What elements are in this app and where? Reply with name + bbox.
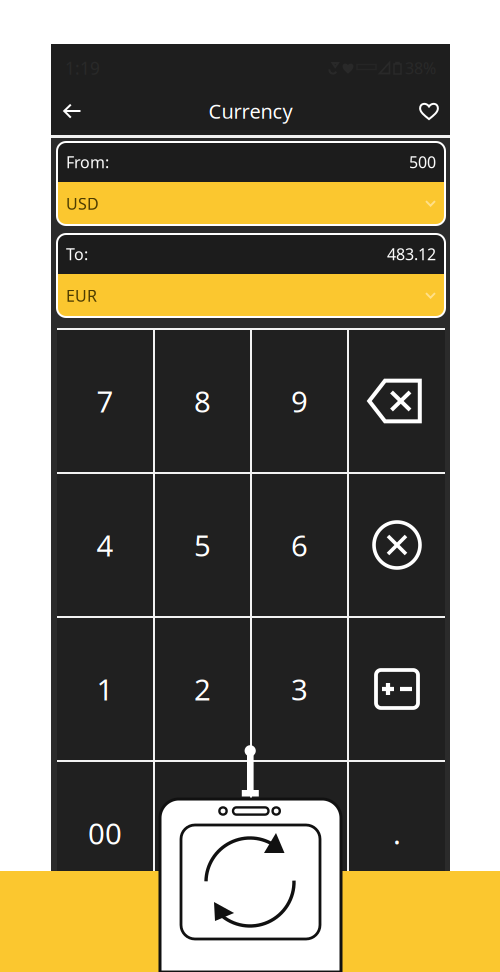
- staticText: 3: [291, 669, 308, 708]
- button[interactable]: Decimal point: [349, 762, 445, 904]
- button[interactable]: 3: [252, 618, 347, 760]
- button[interactable]: 4: [57, 474, 153, 616]
- button[interactable]: ,: [252, 762, 347, 904]
- button[interactable]: EUR: [57, 274, 445, 317]
- button[interactable]: Toggle sign: [349, 618, 445, 760]
- button[interactable]: 0: [155, 762, 250, 904]
- staticText: 4: [96, 525, 113, 564]
- button[interactable]: 8: [155, 330, 250, 472]
- staticText: 00: [88, 813, 122, 852]
- staticText: 483.12: [387, 243, 436, 265]
- staticText: 1: [96, 669, 113, 708]
- staticText: 8: [194, 381, 211, 420]
- staticText: 6: [291, 525, 308, 564]
- button[interactable]: 9: [252, 330, 347, 472]
- button[interactable]: Backspace: [349, 330, 445, 472]
- staticText: USD: [66, 193, 99, 214]
- staticText: 38%: [405, 57, 436, 79]
- button[interactable]: 5: [155, 474, 250, 616]
- staticText: 2: [194, 669, 211, 708]
- staticText: EUR: [66, 285, 97, 306]
- button[interactable]: Back: [53, 89, 91, 133]
- staticText: .: [393, 813, 401, 852]
- button[interactable]: Clear: [349, 474, 445, 616]
- staticText: 7: [96, 381, 113, 420]
- staticText: 500: [409, 151, 436, 173]
- button[interactable]: Favorite: [410, 89, 448, 133]
- staticText: 1:19: [65, 56, 100, 79]
- button[interactable]: 7: [57, 330, 153, 472]
- button[interactable]: 2: [155, 618, 250, 760]
- staticText: 0: [194, 813, 211, 852]
- button[interactable]: 6: [252, 474, 347, 616]
- staticText: To:: [66, 243, 88, 265]
- staticText: ,: [295, 813, 303, 852]
- staticText: 9: [291, 381, 308, 420]
- staticText: Currency: [208, 98, 292, 124]
- staticText: From:: [66, 151, 109, 173]
- staticText: 5: [194, 525, 211, 564]
- button[interactable]: 00: [57, 762, 153, 904]
- button[interactable]: 1: [57, 618, 153, 760]
- button[interactable]: USD: [57, 182, 445, 225]
